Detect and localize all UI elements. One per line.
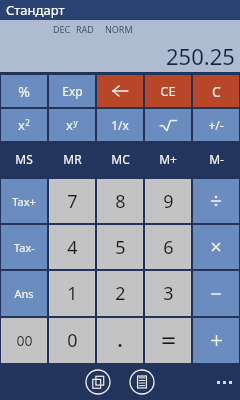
staticText: 9 xyxy=(163,189,174,214)
button[interactable]: History xyxy=(127,367,157,397)
staticText: C xyxy=(212,82,221,101)
staticText: 00 xyxy=(16,331,33,350)
button[interactable]: plus xyxy=(193,318,239,363)
staticText: 8 xyxy=(115,189,126,214)
staticText: Exp xyxy=(62,83,83,99)
staticText: M- xyxy=(209,151,224,167)
button[interactable]: x xyxy=(49,109,95,141)
staticText: MS xyxy=(15,151,33,167)
button[interactable]: 3 xyxy=(145,271,191,316)
button[interactable]: 00 xyxy=(1,318,47,363)
button[interactable]: 0 xyxy=(49,318,95,363)
button[interactable]: Tax+ xyxy=(1,179,47,223)
button[interactable]: Exp xyxy=(49,75,95,107)
staticText: Tax- xyxy=(14,240,35,255)
button[interactable]: M- xyxy=(193,143,239,175)
button[interactable]: . xyxy=(97,318,143,363)
staticText: NORM xyxy=(105,23,133,35)
staticText: 2 xyxy=(25,117,30,128)
staticText: 1 xyxy=(67,281,78,306)
staticText: 3 xyxy=(163,281,174,306)
button[interactable]: 2 xyxy=(97,271,143,316)
button[interactable]: 1 xyxy=(49,271,95,316)
staticText: 6 xyxy=(163,235,174,260)
button[interactable]: back xyxy=(97,75,143,107)
staticText: DEC xyxy=(53,23,71,35)
staticText: CE xyxy=(160,82,176,100)
staticText: x xyxy=(18,116,25,134)
button[interactable]: Copy xyxy=(83,367,113,397)
button[interactable]: div xyxy=(193,179,239,223)
button[interactable]: M+ xyxy=(145,143,191,175)
staticText: x xyxy=(66,116,73,134)
button[interactable]: 5 xyxy=(97,225,143,269)
staticText: Ans xyxy=(14,286,34,301)
button[interactable]: +/- xyxy=(193,109,239,141)
staticText: RAD xyxy=(76,23,94,35)
staticText: MC xyxy=(111,151,130,167)
button[interactable]: 8 xyxy=(97,179,143,223)
button[interactable]: sqrt xyxy=(145,109,191,141)
staticText: Стандарт xyxy=(6,1,65,19)
button[interactable]: Ans xyxy=(1,271,47,316)
button[interactable]: CE xyxy=(145,75,191,107)
button[interactable]: 6 xyxy=(145,225,191,269)
staticText: MR xyxy=(63,151,82,167)
button[interactable]: minus xyxy=(193,271,239,316)
staticText: M+ xyxy=(159,151,177,167)
button[interactable]: 9 xyxy=(145,179,191,223)
button[interactable]: More options xyxy=(217,381,232,384)
staticText: 4 xyxy=(67,235,78,260)
button[interactable]: MR xyxy=(49,143,95,175)
button[interactable]: 7 xyxy=(49,179,95,223)
button[interactable]: mul xyxy=(193,225,239,269)
staticText: . xyxy=(117,328,123,353)
button[interactable]: Tax- xyxy=(1,225,47,269)
button[interactable]: x xyxy=(1,109,47,141)
button[interactable]: 1/x xyxy=(97,109,143,141)
staticText: 1/x xyxy=(111,117,129,133)
staticText: 2 xyxy=(115,281,126,306)
button[interactable]: MS xyxy=(1,143,47,175)
staticText: 5 xyxy=(115,235,126,260)
button[interactable]: C xyxy=(193,75,239,107)
staticText: 0 xyxy=(67,328,78,353)
staticText: +/- xyxy=(208,117,224,133)
button[interactable]: % xyxy=(1,75,47,107)
button[interactable]: eq xyxy=(145,318,191,363)
staticText: 7 xyxy=(67,189,78,214)
staticText: 250.25 xyxy=(166,41,235,71)
staticText: y xyxy=(73,117,78,128)
button[interactable]: MC xyxy=(97,143,143,175)
staticText: % xyxy=(18,82,30,101)
staticText: Tax+ xyxy=(12,194,36,209)
button[interactable]: 4 xyxy=(49,225,95,269)
